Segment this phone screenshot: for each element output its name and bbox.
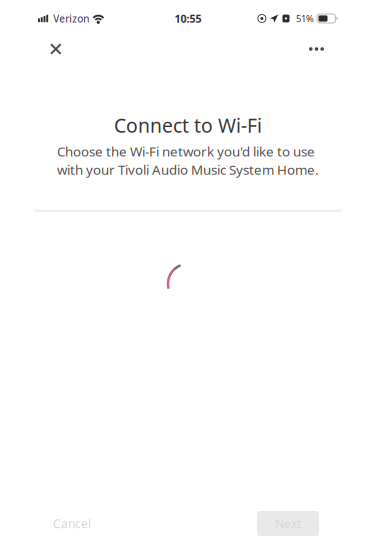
button[interactable]: Cancel [44, 511, 100, 536]
staticText: 10:55 [174, 11, 201, 26]
button[interactable]: Next [257, 511, 319, 536]
staticText: 51% [296, 12, 314, 25]
staticText: Choose the Wi-Fi network you'd like to u… [57, 142, 319, 179]
button[interactable]: More options [280, 34, 324, 64]
staticText: Verizon [53, 12, 89, 25]
staticText: Next [275, 515, 301, 532]
staticText: Cancel [53, 515, 91, 532]
staticText: Connect to Wi-Fi [114, 112, 262, 138]
button[interactable]: Close [50, 34, 94, 64]
